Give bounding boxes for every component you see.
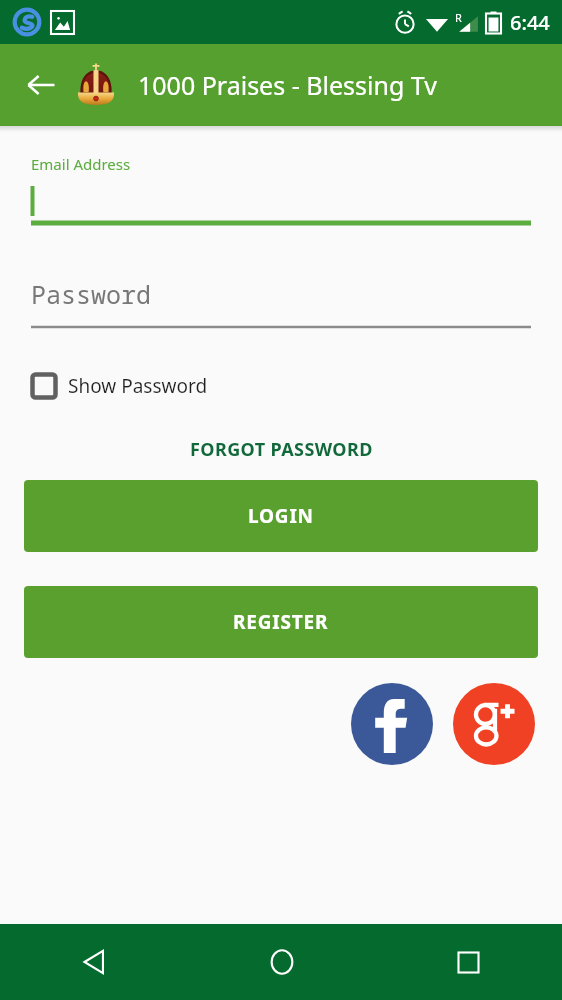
staticText: FORGOT PASSWORD [190,437,373,462]
button[interactable]: REGISTER [24,586,538,658]
button[interactable]: Sign in with Google Plus [453,683,535,765]
staticText: Password [31,277,152,311]
staticText: REGISTER [233,609,329,635]
staticText: 6:44 [510,9,550,36]
button[interactable]: Password [31,279,531,329]
staticText: 1000 Praises - Blessing Tv [138,68,437,102]
button[interactable] [31,182,531,227]
button[interactable]: Sign in with Facebook [351,683,433,765]
button[interactable]: Home [188,924,375,1000]
button[interactable]: Back [0,924,188,1000]
staticText: Show Password [68,373,208,399]
button[interactable]: Back [15,59,67,111]
button[interactable]: Recent apps [375,924,562,1000]
button[interactable]: LOGIN [24,480,538,552]
button[interactable]: FORGOT PASSWORD [178,431,385,468]
staticText: Email Address [31,154,131,174]
staticText: R [455,10,462,25]
button[interactable]: Show Password [31,365,208,407]
staticText: LOGIN [248,503,314,529]
